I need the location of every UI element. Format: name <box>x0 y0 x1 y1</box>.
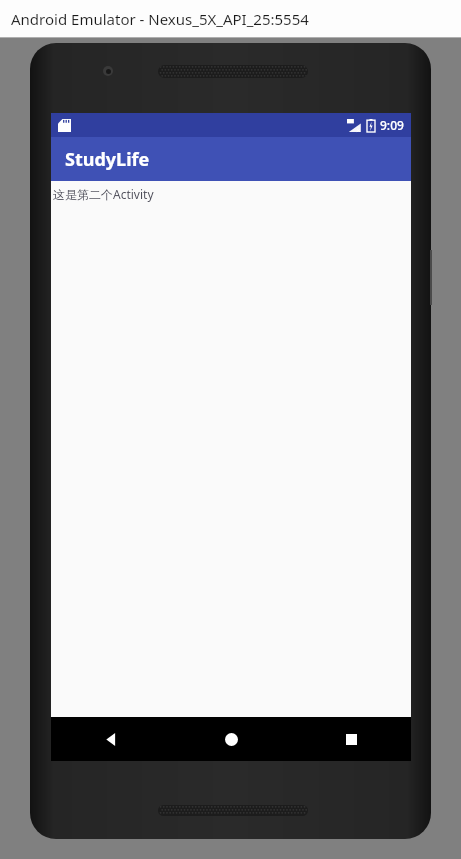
staticText: StudyLife <box>65 147 150 172</box>
button[interactable]: Home <box>171 717 291 761</box>
staticText: 9:09 <box>380 117 404 133</box>
button[interactable]: Recent apps <box>291 717 411 761</box>
button[interactable]: Back <box>51 717 171 761</box>
staticText: 这是第二个Activity <box>53 186 154 202</box>
staticText: Android Emulator - Nexus_5X_API_25:5554 <box>11 9 309 29</box>
